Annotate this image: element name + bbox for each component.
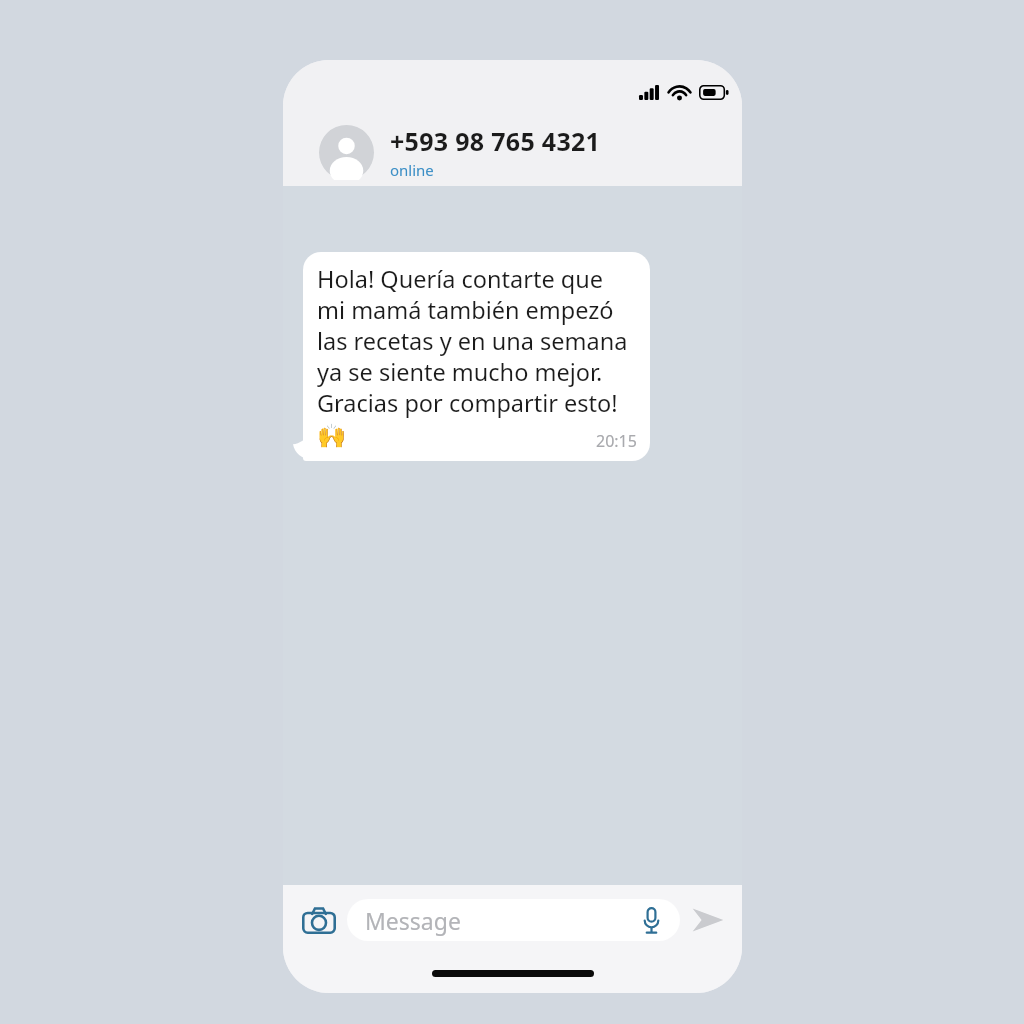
staticText: Hola! Quería contarte que mi mamá tambié… [317,263,636,449]
button[interactable]: Message [347,899,680,941]
staticText: Message [365,905,461,936]
button[interactable]: Camera [295,896,343,944]
button[interactable]: +593 98 765 4321 [319,124,601,180]
staticText: 20:15 [596,430,637,452]
staticText: online [390,160,434,180]
button[interactable]: Hola! Quería contarte que mi mamá tambié… [303,252,650,461]
button[interactable]: Send [686,898,730,942]
button[interactable]: Voice message [636,905,666,935]
staticText: +593 98 765 4321 [390,124,601,158]
